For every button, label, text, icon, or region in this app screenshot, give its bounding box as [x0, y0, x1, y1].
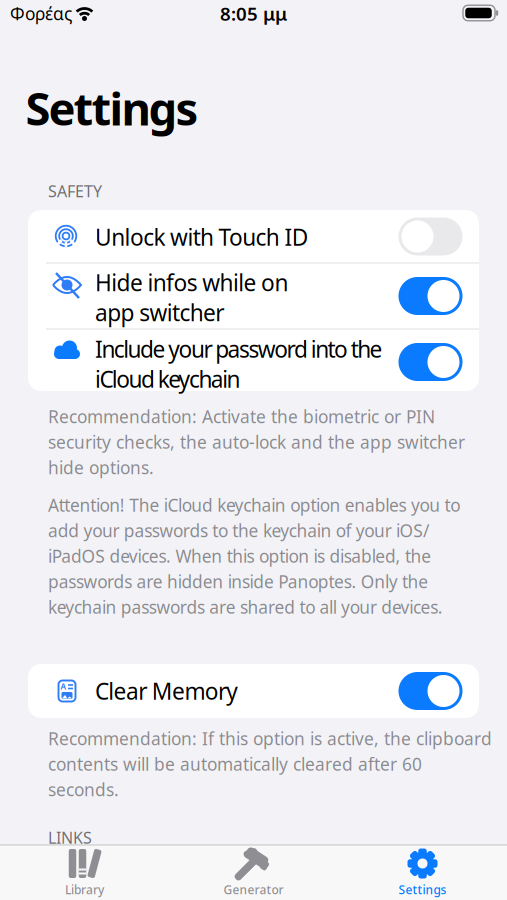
staticText: LINKS	[48, 827, 92, 848]
staticText: Library	[65, 881, 104, 897]
staticText: Unlock with Touch ID	[95, 222, 309, 252]
staticText: Φορέας	[10, 2, 72, 25]
staticText: Generator	[223, 881, 283, 897]
staticText: 8:05 μμ	[220, 1, 287, 26]
staticText: Attention! The iCloud keychain option en…	[48, 493, 460, 619]
staticText: Hide infos while on app switcher	[95, 267, 288, 328]
button[interactable]: Include your password into the iCloud ke…	[398, 343, 462, 381]
button[interactable]: Library	[0, 845, 169, 900]
staticText: Settings	[25, 78, 198, 138]
button[interactable]: Settings	[338, 845, 507, 900]
staticText: Include your password into the iCloud ke…	[95, 334, 383, 394]
button[interactable]: Unlock with Touch ID	[398, 217, 462, 255]
staticText: Recommendation: If this option is active…	[48, 727, 492, 801]
button[interactable]: Generator	[169, 845, 338, 900]
button[interactable]: Clear Memory	[398, 672, 462, 710]
staticText: Recommendation: Activate the biometric o…	[48, 405, 465, 479]
staticText: Clear Memory	[95, 676, 238, 706]
staticText: Settings	[398, 881, 446, 897]
staticText: SAFETY	[48, 180, 102, 202]
button[interactable]: Hide infos while on app switcher	[398, 277, 462, 315]
staticText: A	[60, 681, 66, 692]
